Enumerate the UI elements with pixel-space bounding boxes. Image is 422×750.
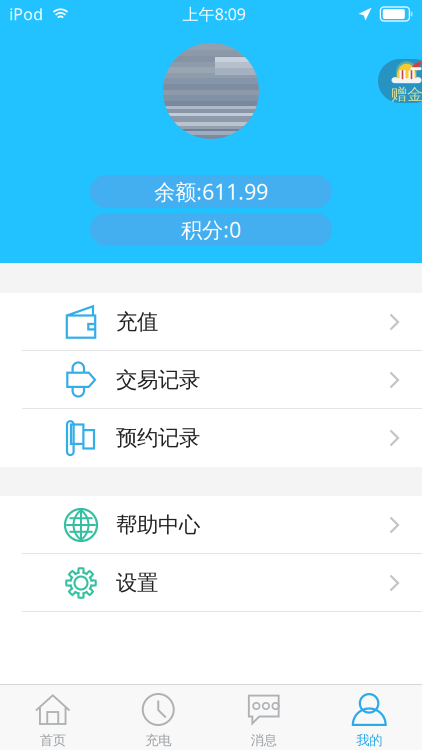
button[interactable]: 首页 xyxy=(0,685,105,750)
button[interactable]: 交易记录 xyxy=(0,351,422,409)
staticText: 充电 xyxy=(145,732,171,748)
staticText: iPod xyxy=(9,3,43,25)
button[interactable]: 头像 xyxy=(163,43,259,139)
button[interactable]: 赠金 xyxy=(378,59,422,103)
staticText: 交易记录 xyxy=(116,367,200,393)
button[interactable]: 消息 xyxy=(211,685,316,750)
staticText: 设置 xyxy=(116,570,158,596)
staticText: 我的 xyxy=(356,732,382,748)
staticText: 上午8:09 xyxy=(182,3,245,25)
staticText: 积分:0 xyxy=(181,215,241,244)
button[interactable]: 我的 xyxy=(316,685,422,750)
button[interactable]: 充值 xyxy=(0,293,422,351)
staticText: 帮助中心 xyxy=(116,512,200,538)
button[interactable]: 充电 xyxy=(105,685,211,750)
staticText: 余额:611.99 xyxy=(154,177,268,206)
button[interactable]: 设置 xyxy=(0,554,422,612)
button[interactable]: 预约记录 xyxy=(0,409,422,467)
staticText: 消息 xyxy=(251,732,277,748)
staticText: 首页 xyxy=(40,732,66,748)
staticText: 充值 xyxy=(116,309,158,335)
staticText: 赠金 xyxy=(391,85,422,104)
button[interactable]: 帮助中心 xyxy=(0,496,422,554)
staticText: 预约记录 xyxy=(116,425,200,451)
